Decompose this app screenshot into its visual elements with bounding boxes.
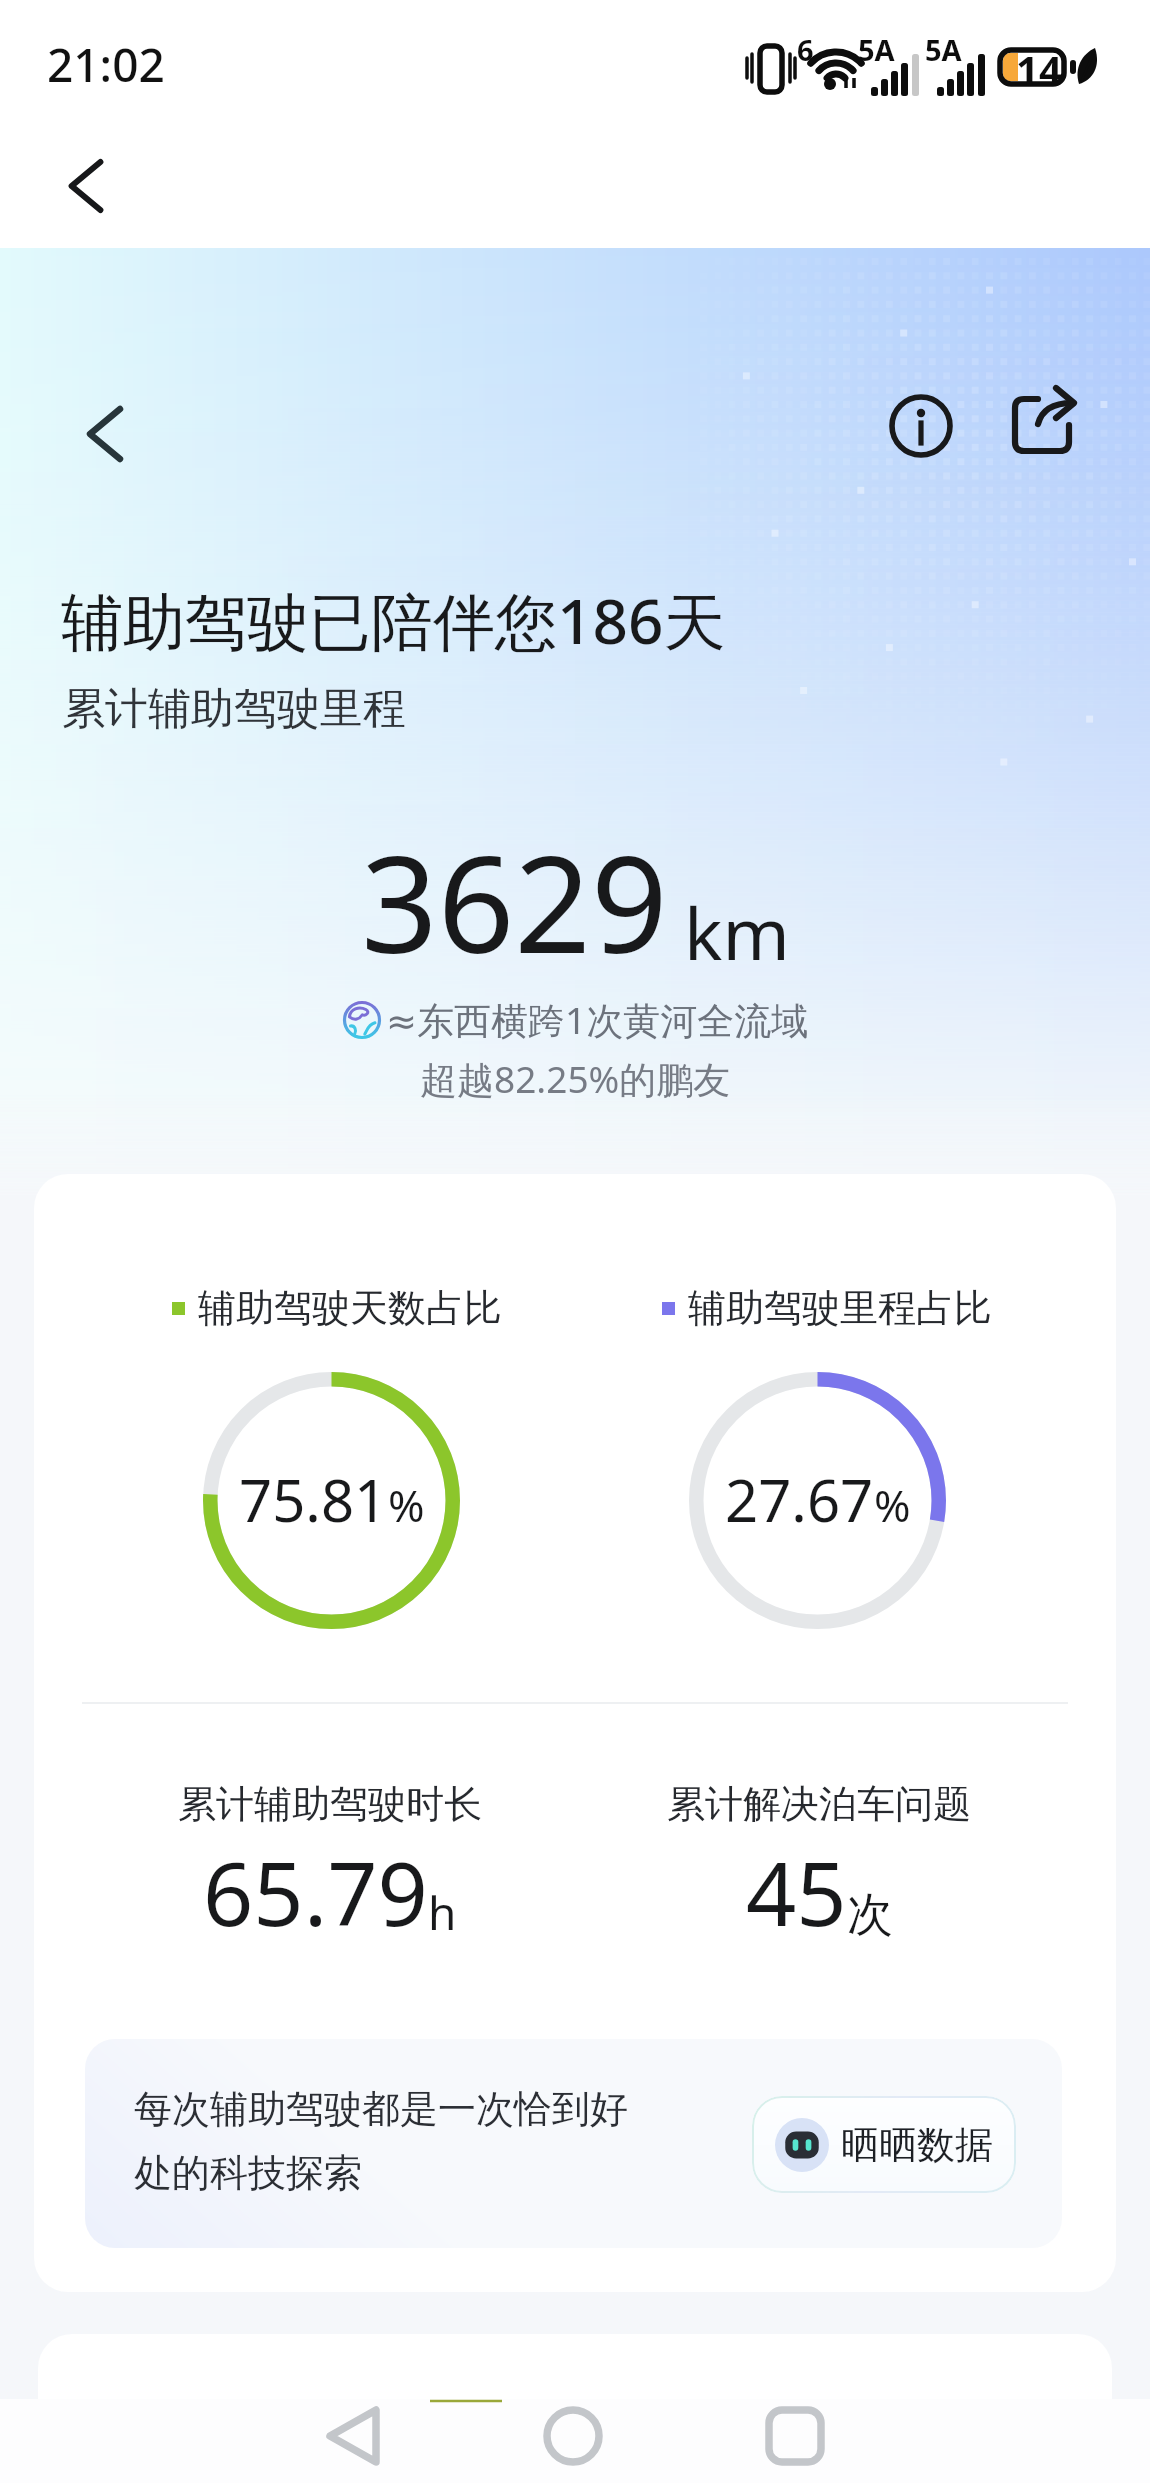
button[interactable]: Back [40,140,132,232]
staticText: 超越82.25%的鹏友 [420,1053,731,1104]
button[interactable]: 晒晒数据 [752,2096,1016,2193]
button[interactable]: Back [70,399,140,469]
staticText: % [388,1475,425,1535]
staticText: 21:02 [47,33,165,96]
staticText: 每次辅助驾驶都是一次恰到好 [134,2085,628,2133]
staticText: 6 [797,30,814,69]
staticText: % [874,1475,911,1535]
staticText: 辅助驾驶里程占比 [688,1284,992,1332]
staticText: 5A [858,30,895,69]
staticText: 辅助驾驶天数占比 [198,1284,502,1332]
staticText: 累计解决泊车问题 [667,1780,971,1828]
staticText: 累计辅助驾驶时长 [178,1780,482,1828]
button[interactable]: Info [874,378,968,472]
staticText: ≈东西横跨1次黄河全流域 [386,994,809,1045]
staticText: 累计辅助驾驶里程 [62,682,406,736]
staticText: h [428,1881,457,1944]
staticText: 3629 [361,810,668,993]
staticText: 75.81 [239,1460,388,1539]
staticText: 65.79 [203,1832,428,1952]
staticText: 5A [925,30,962,69]
staticText: 27.67 [725,1460,874,1539]
staticText: 次 [847,1886,893,1944]
staticText: 45 [746,1832,847,1952]
staticText: km [684,883,790,981]
staticText: 14 [1016,42,1062,96]
button[interactable]: Share [996,382,1090,476]
staticText: 晒晒数据 [841,2121,993,2169]
staticText: 辅助驾驶已陪伴您186天 [61,578,726,663]
staticText: 处的科技探索 [134,2149,362,2197]
